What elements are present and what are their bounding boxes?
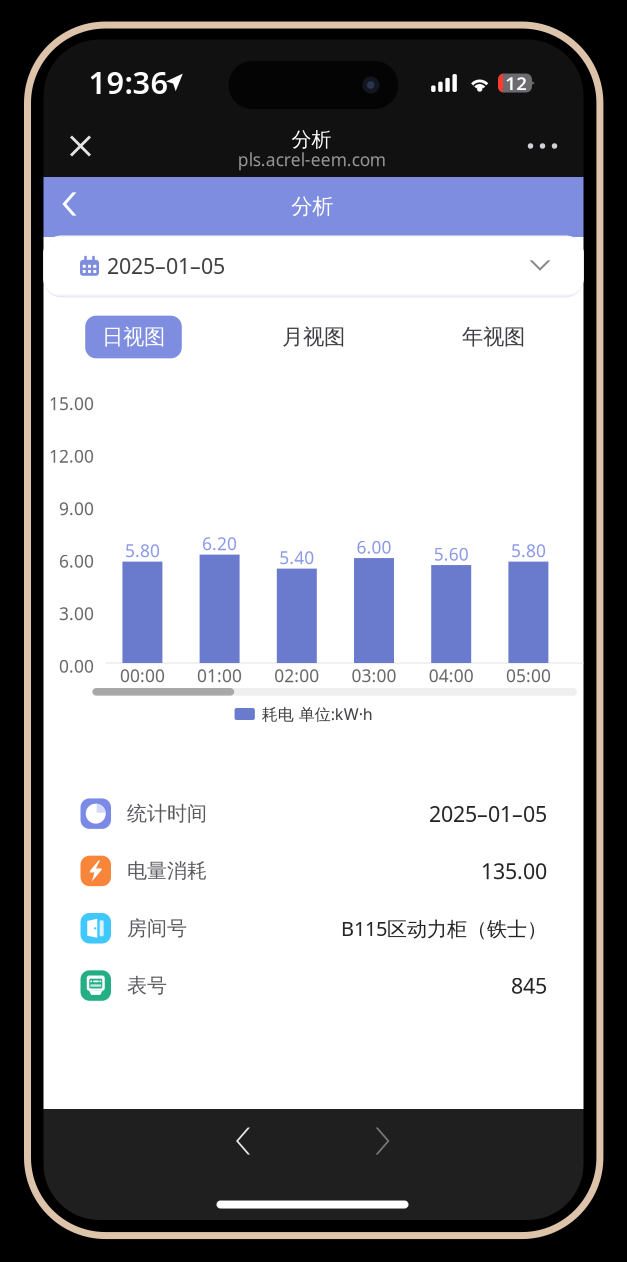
- staticText: 845: [511, 971, 547, 1000]
- staticText: 分析: [291, 127, 331, 152]
- staticText: pls.acrel-eem.com: [238, 148, 386, 171]
- button[interactable]: Back: [210, 1112, 276, 1170]
- staticText: 分析: [291, 193, 333, 220]
- staticText: 5.80: [125, 539, 160, 562]
- staticText: 0.00: [59, 654, 94, 677]
- staticText: 12: [505, 71, 527, 95]
- staticText: 19:36: [89, 62, 169, 102]
- button[interactable]: More: [513, 118, 571, 174]
- button[interactable]: Forward: [349, 1112, 415, 1170]
- staticText: 月视图: [282, 324, 345, 350]
- staticText: 6.20: [202, 532, 237, 555]
- staticText: 135.00: [481, 857, 547, 885]
- staticText: 6.00: [59, 549, 94, 572]
- staticText: 表号: [127, 973, 167, 998]
- staticText: 2025–01–05: [107, 252, 225, 280]
- staticText: 日视图: [102, 324, 165, 350]
- button[interactable]: Close: [55, 118, 105, 174]
- staticText: 12.00: [49, 445, 94, 468]
- button[interactable]: 年视图: [403, 315, 583, 359]
- staticText: 6.00: [356, 536, 391, 559]
- staticText: 03:00: [351, 664, 396, 687]
- button[interactable]: Back: [44, 176, 94, 232]
- staticText: 05:00: [506, 664, 551, 687]
- staticText: 02:00: [274, 664, 319, 687]
- staticText: 房间号: [127, 916, 187, 941]
- button[interactable]: 日视图: [43, 315, 223, 359]
- staticText: 5.60: [434, 543, 469, 566]
- staticText: 9.00: [59, 497, 94, 520]
- staticText: 01:00: [197, 664, 242, 687]
- staticText: 年视图: [462, 324, 525, 350]
- staticText: 耗电 单位:kW·h: [262, 703, 373, 725]
- staticText: 2025–01–05: [429, 799, 547, 828]
- staticText: 00:00: [120, 664, 165, 687]
- staticText: 5.40: [279, 546, 314, 569]
- staticText: B115区动力柜（铁士）: [341, 915, 547, 942]
- staticText: 统计时间: [127, 801, 207, 826]
- staticText: 15.00: [49, 392, 94, 415]
- staticText: 3.00: [59, 602, 94, 625]
- staticText: 电量消耗: [127, 859, 207, 883]
- button[interactable]: 月视图: [223, 315, 403, 359]
- button[interactable]: 2025–01–05: [43, 237, 583, 295]
- staticText: 04:00: [429, 664, 474, 687]
- staticText: 5.80: [511, 539, 546, 562]
